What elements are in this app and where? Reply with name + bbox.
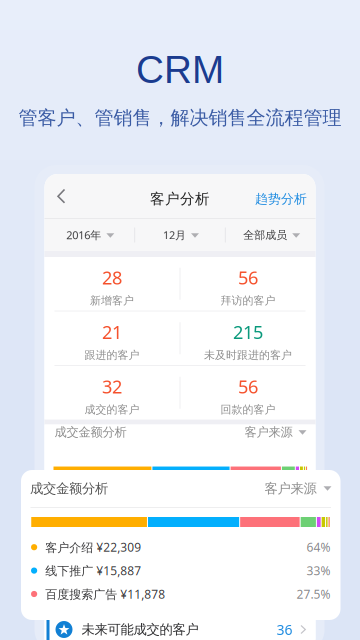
- staticText: 32: [102, 374, 122, 399]
- button[interactable]: 线下推广 ¥15,887: [21, 559, 340, 582]
- staticText: 客户介绍 ¥22,309: [45, 539, 141, 555]
- staticText: 64%: [306, 539, 330, 555]
- staticText: 56: [238, 374, 258, 399]
- staticText: 27.5%: [296, 586, 330, 602]
- staticText: 管客户、管销售，解决销售全流程管理: [18, 106, 341, 130]
- button[interactable]: 返回: [44, 174, 70, 218]
- staticText: 56: [238, 265, 258, 290]
- button[interactable]: 21: [44, 311, 179, 365]
- staticText: 回款的客户: [220, 403, 275, 416]
- staticText: 28: [102, 265, 122, 290]
- staticText: 215: [233, 319, 263, 344]
- button[interactable]: 客户来源: [264, 480, 331, 497]
- button[interactable]: 12月: [135, 219, 225, 251]
- staticText: 客户分析: [150, 190, 210, 208]
- staticText: 12月: [163, 228, 186, 242]
- staticText: 趋势分析: [255, 191, 307, 207]
- staticText: 百度搜索广告 ¥11,878: [45, 586, 165, 602]
- staticText: 线下推广 ¥15,887: [45, 562, 141, 579]
- staticText: 客户来源: [244, 424, 292, 440]
- button[interactable]: 全部成员: [226, 219, 315, 251]
- button[interactable]: 2016年: [44, 219, 134, 251]
- staticText: CRM: [136, 48, 224, 91]
- staticText: 新增客户: [90, 294, 134, 307]
- button[interactable]: 32: [44, 366, 179, 419]
- button[interactable]: 56: [180, 257, 315, 310]
- button[interactable]: 趋势分析: [255, 174, 315, 218]
- staticText: 跟进的客户: [84, 348, 139, 362]
- staticText: 成交的客户: [84, 403, 139, 416]
- button[interactable]: 56: [180, 366, 315, 419]
- staticText: 33%: [306, 562, 330, 579]
- staticText: 未来可能成交的客户: [81, 621, 198, 638]
- staticText: 2016年: [66, 228, 101, 242]
- staticText: 成交金额分析: [30, 480, 108, 497]
- staticText: 未及时跟进的客户: [204, 348, 292, 362]
- button[interactable]: 百度搜索广告 ¥11,878: [21, 582, 340, 606]
- staticText: 全部成员: [243, 228, 287, 242]
- button[interactable]: 28: [44, 257, 179, 310]
- staticText: 拜访的客户: [220, 294, 275, 307]
- button[interactable]: 未来可能成交的客户: [44, 613, 315, 640]
- staticText: 21: [102, 319, 122, 344]
- staticText: 36: [276, 620, 292, 639]
- button[interactable]: 215: [180, 311, 315, 365]
- button[interactable]: 客户介绍 ¥22,309: [21, 535, 340, 559]
- staticText: 成交金额分析: [54, 424, 126, 440]
- staticText: 客户来源: [264, 480, 316, 497]
- button[interactable]: 客户来源: [244, 424, 305, 440]
